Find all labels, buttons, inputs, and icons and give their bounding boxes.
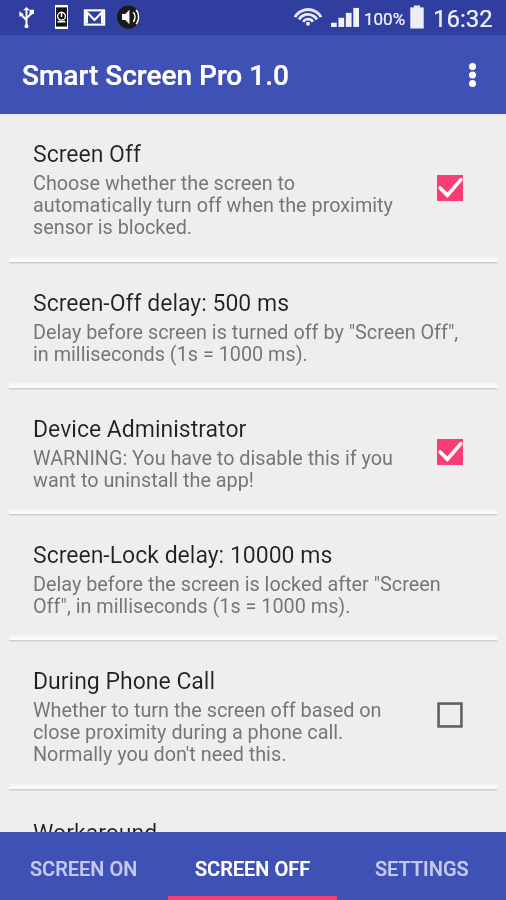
staticText: Device Administrator [33, 416, 247, 443]
button[interactable]: Enabled, checked [426, 428, 474, 476]
button[interactable]: Screen-Off delay: 500 ms [0, 263, 506, 388]
staticText: Choose whether the screen to automatical… [33, 172, 401, 239]
button[interactable]: Workaround [0, 790, 506, 832]
button[interactable]: SCREEN ON [0, 832, 168, 900]
staticText: Delay before screen is turned off by "Sc… [33, 321, 466, 366]
staticText: Delay before the screen is locked after … [33, 573, 466, 618]
button[interactable]: Enabled, checked [426, 164, 474, 212]
staticText: SETTINGS [375, 857, 469, 880]
staticText: Workaround [33, 820, 158, 832]
button[interactable]: SETTINGS [337, 832, 506, 900]
button[interactable]: Device Administrator [0, 389, 506, 514]
staticText: 100% [364, 9, 406, 29]
button[interactable]: Disabled, unchecked [426, 691, 474, 739]
staticText: Screen-Off delay: 500 ms [33, 290, 290, 317]
button[interactable]: SCREEN OFF [168, 832, 337, 900]
staticText: SCREEN OFF [195, 857, 311, 880]
button[interactable]: Screen Off [0, 114, 506, 262]
button[interactable]: More options [448, 51, 496, 99]
staticText: SCREEN ON [30, 857, 138, 880]
staticText: Whether to turn the screen off based on … [33, 699, 401, 766]
staticText: Screen Off [33, 141, 141, 168]
staticText: Screen-Lock delay: 10000 ms [33, 542, 333, 569]
staticText: WARNING: You have to disable this if you… [33, 447, 401, 492]
button[interactable]: During Phone Call [0, 641, 506, 789]
staticText: During Phone Call [33, 668, 216, 695]
button[interactable]: Screen-Lock delay: 10000 ms [0, 515, 506, 640]
staticText: 16:32 [433, 5, 493, 33]
staticText: Smart Screen Pro 1.0 [22, 59, 289, 92]
